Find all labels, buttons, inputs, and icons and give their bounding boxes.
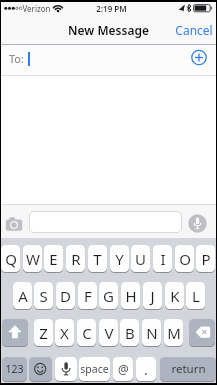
button[interactable]: O (175, 245, 194, 272)
button[interactable] (29, 357, 52, 381)
staticText: W (26, 249, 40, 269)
staticText: Z (39, 323, 48, 343)
staticText: N (146, 323, 158, 343)
button[interactable]: A (13, 282, 32, 309)
staticText: 123 (5, 362, 24, 376)
button[interactable]: T (88, 245, 107, 272)
staticText: T (93, 249, 102, 269)
button[interactable]: P (196, 245, 215, 272)
staticText: @ (118, 361, 129, 377)
button[interactable]: G (99, 282, 118, 309)
staticText: E (49, 249, 58, 269)
staticText: . (144, 360, 148, 379)
staticText: O (179, 249, 191, 269)
button[interactable]: . (136, 357, 156, 381)
button[interactable]: B (120, 319, 139, 346)
button[interactable] (2, 319, 28, 346)
button[interactable]: Y (110, 245, 129, 272)
staticText: D (60, 286, 71, 306)
staticText: V (104, 323, 114, 343)
staticText: C (82, 323, 92, 343)
staticText: B (125, 323, 135, 343)
button[interactable]: W (23, 245, 42, 272)
staticText: X (60, 323, 69, 343)
staticText: I (160, 249, 166, 269)
button[interactable] (189, 319, 215, 346)
staticText: K (170, 286, 180, 306)
staticText: P (201, 249, 211, 269)
staticText: Cancel (175, 22, 213, 38)
button[interactable]: M (164, 319, 183, 346)
staticText: S (39, 286, 48, 306)
button[interactable] (190, 49, 208, 67)
staticText: U (135, 249, 146, 269)
staticText: M (167, 323, 181, 343)
button[interactable] (0, 45, 217, 75)
button[interactable]: return (160, 357, 216, 381)
button[interactable]: N (142, 319, 161, 346)
button[interactable]: R (66, 245, 85, 272)
button[interactable]: J (143, 282, 162, 309)
staticText: A (18, 286, 28, 306)
staticText: L (192, 286, 200, 306)
button[interactable]: @ (113, 357, 133, 381)
button[interactable] (5, 216, 23, 232)
button[interactable]: space (79, 357, 110, 381)
button[interactable]: I (153, 245, 172, 272)
staticText: R (71, 249, 81, 269)
button[interactable] (29, 211, 182, 233)
button[interactable]: K (165, 282, 184, 309)
staticText: J (150, 286, 155, 306)
staticText: Verizon (22, 3, 51, 14)
button[interactable]: Cancel (172, 22, 215, 38)
button[interactable]: H (121, 282, 140, 309)
button[interactable]: Q (1, 245, 20, 272)
button[interactable]: Z (34, 319, 53, 346)
staticText: New Message (68, 22, 149, 38)
button[interactable]: C (77, 319, 96, 346)
staticText: G (103, 286, 114, 306)
staticText: H (125, 286, 137, 306)
staticText: Q (5, 249, 17, 269)
button[interactable]: E (44, 245, 63, 272)
button[interactable] (188, 214, 207, 233)
button[interactable]: F (78, 282, 97, 309)
staticText: Y (115, 249, 124, 269)
button[interactable]: D (56, 282, 75, 309)
staticText: To: (9, 51, 24, 66)
staticText: return (171, 361, 206, 377)
button[interactable]: U (131, 245, 150, 272)
button[interactable]: S (34, 282, 53, 309)
button[interactable]: L (186, 282, 205, 309)
button[interactable]: 123 (2, 357, 27, 381)
button[interactable]: V (99, 319, 118, 346)
staticText: F (84, 286, 92, 306)
staticText: space (80, 362, 109, 376)
staticText: 2:19 PM (96, 3, 127, 14)
button[interactable]: X (55, 319, 74, 346)
button[interactable] (55, 357, 77, 381)
